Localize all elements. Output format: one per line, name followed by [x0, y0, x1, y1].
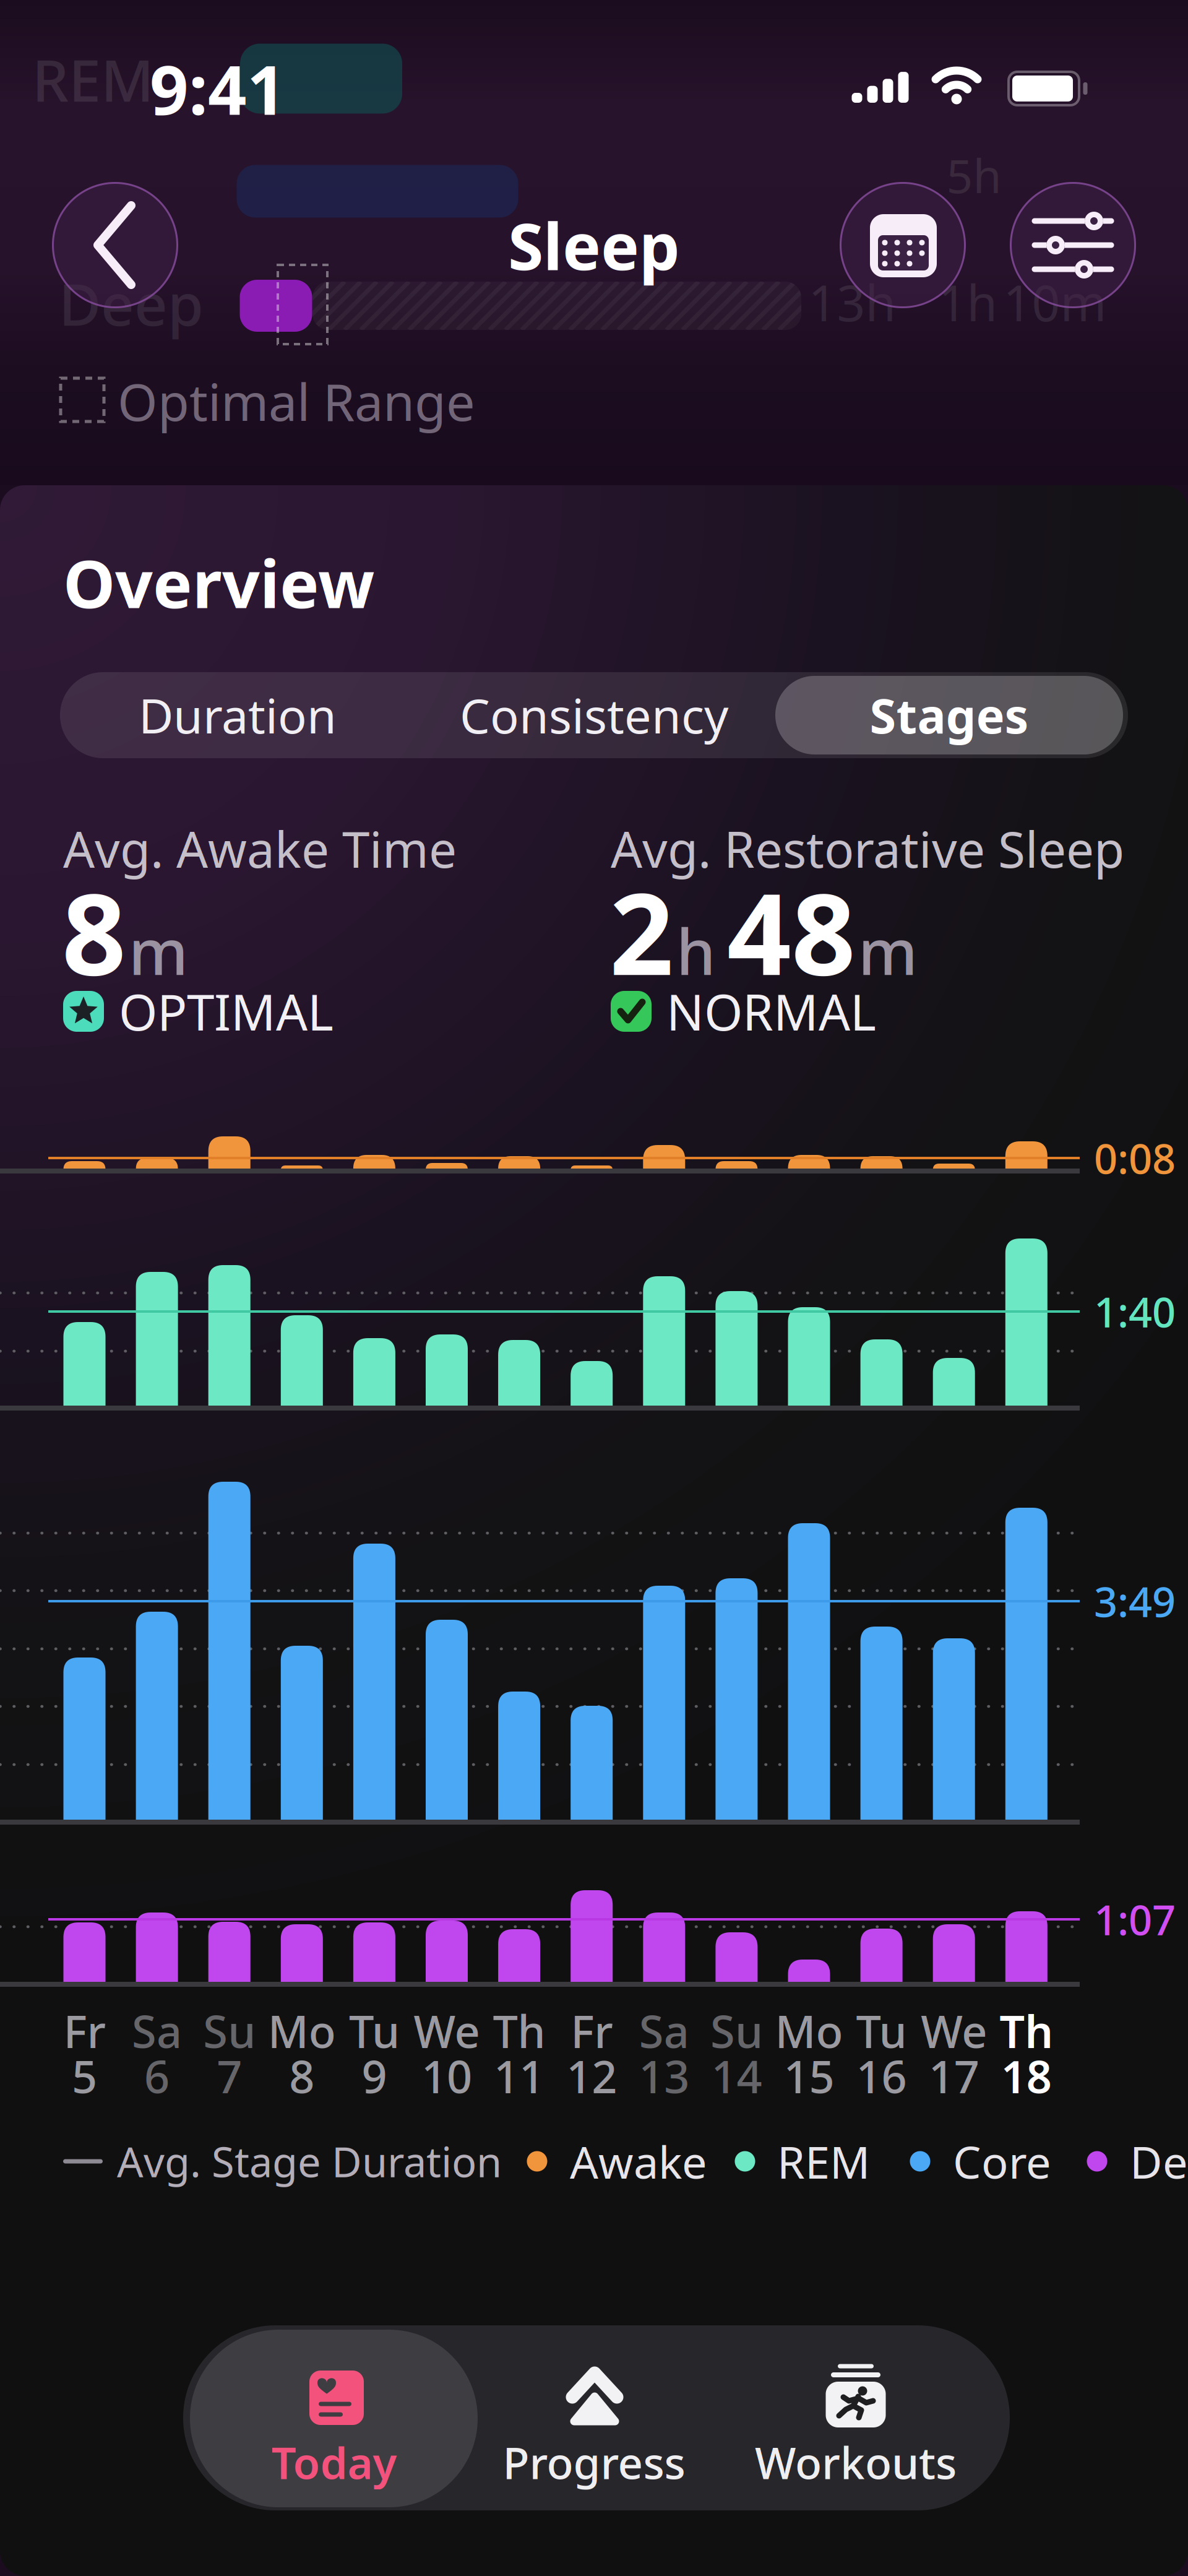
staticText: Workouts [755, 2433, 957, 2491]
staticText: 17 [929, 2046, 979, 2105]
staticText: 10 [421, 2046, 472, 2105]
staticText: h [676, 909, 716, 992]
staticText: Avg. Stage Duration [117, 2134, 502, 2189]
staticText: Deep [1130, 2132, 1188, 2191]
staticText: REM [777, 2132, 870, 2191]
staticText: Sa [639, 2001, 689, 2060]
staticText: Duration [139, 683, 337, 747]
staticText: OPTIMAL [119, 978, 334, 1044]
staticText: Core [953, 2132, 1051, 2191]
staticText: Tu [856, 2001, 907, 2060]
staticText: 13h [808, 269, 896, 335]
staticText: 8 [289, 2046, 315, 2105]
staticText: NORMAL [666, 978, 876, 1044]
staticText: Optimal Range [118, 367, 475, 435]
staticText: Avg. Awake Time [63, 816, 457, 881]
staticText: Fr [63, 2001, 105, 2060]
staticText: 6 [144, 2046, 170, 2105]
staticText: 1:07 [1094, 1892, 1176, 1947]
staticText: 14 [711, 2046, 762, 2105]
staticText: REM [32, 41, 154, 118]
staticText: Sa [132, 2001, 182, 2060]
staticText: Th [493, 2001, 545, 2060]
staticText: Tu [349, 2001, 400, 2060]
staticText: Avg. Restorative Sleep [611, 816, 1124, 881]
staticText: Today [271, 2433, 397, 2491]
staticText: 5 [72, 2046, 97, 2105]
staticText: 8 [62, 857, 126, 1006]
staticText: 11 [494, 2046, 545, 2105]
staticText: Consistency [460, 683, 728, 747]
staticText: 10m [1003, 269, 1107, 335]
staticText: 12 [566, 2046, 617, 2105]
staticText: Su [710, 2001, 763, 2060]
staticText: Awake [570, 2132, 707, 2191]
staticText: Deep [59, 265, 204, 342]
staticText: 13 [639, 2046, 689, 2105]
staticText: 3:49 [1094, 1574, 1176, 1629]
staticText: m [129, 909, 188, 992]
staticText: 7 [217, 2046, 242, 2105]
staticText: 48 [727, 857, 856, 1006]
staticText: m [858, 909, 918, 992]
staticText: 2 [609, 857, 674, 1006]
staticText: 1h [938, 269, 997, 335]
staticText: 0:08 [1094, 1131, 1176, 1185]
staticText: Th [999, 2001, 1053, 2060]
staticText: Sleep [508, 202, 680, 288]
staticText: Progress [503, 2433, 685, 2491]
staticText: We [921, 2001, 987, 2060]
staticText: We [414, 2001, 480, 2060]
staticText: Stages [870, 683, 1029, 747]
staticText: 15 [784, 2046, 834, 2105]
staticText: 9 [362, 2046, 387, 2105]
staticText: 16 [856, 2046, 907, 2105]
staticText: 1:40 [1094, 1284, 1176, 1339]
staticText: Mo [775, 2001, 843, 2060]
staticText: Fr [571, 2001, 613, 2060]
staticText: Overview [63, 539, 374, 626]
staticText: Su [203, 2001, 256, 2060]
staticText: Mo [268, 2001, 336, 2060]
staticText: 9:41 [150, 44, 286, 133]
staticText: 5h [946, 144, 1001, 206]
staticText: 18 [1001, 2046, 1052, 2105]
